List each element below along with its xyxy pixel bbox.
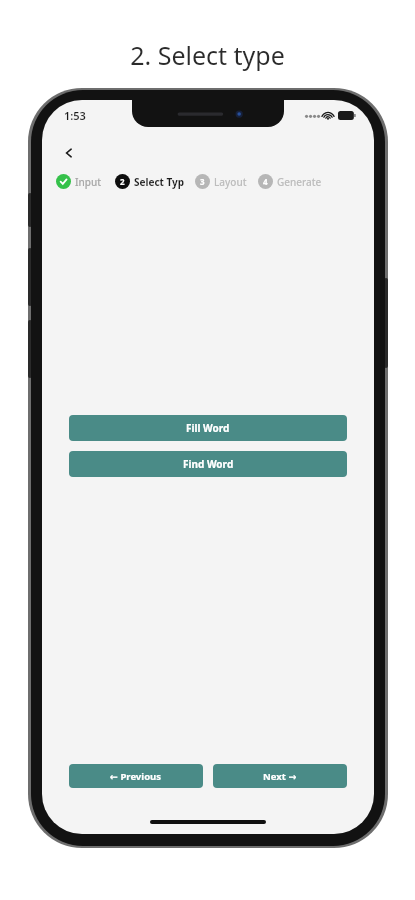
staticText: Select Typ <box>134 175 185 189</box>
staticText: 2. Select type <box>0 38 415 72</box>
button[interactable]: 3 <box>195 174 247 189</box>
button[interactable]: Next → <box>213 764 347 788</box>
staticText: Next → <box>263 770 297 783</box>
staticText: Find Word <box>183 457 234 471</box>
staticText: 4 <box>263 176 268 187</box>
staticText: Fill Word <box>186 421 230 435</box>
staticText: 2 <box>120 176 125 187</box>
button[interactable]: ← Previous <box>69 764 203 788</box>
staticText: ← Previous <box>110 770 162 783</box>
staticText: Layout <box>214 175 247 189</box>
button[interactable]: Input <box>56 174 102 189</box>
button[interactable]: 2 <box>115 174 185 189</box>
button[interactable]: Find Word <box>69 451 347 477</box>
button[interactable]: Fill Word <box>69 415 347 441</box>
button[interactable]: 4 <box>258 174 322 189</box>
button[interactable]: Back <box>54 138 84 168</box>
staticText: Input <box>75 175 102 189</box>
staticText: Generate <box>277 175 322 189</box>
staticText: 1:53 <box>64 108 86 123</box>
staticText: 3 <box>200 176 205 187</box>
